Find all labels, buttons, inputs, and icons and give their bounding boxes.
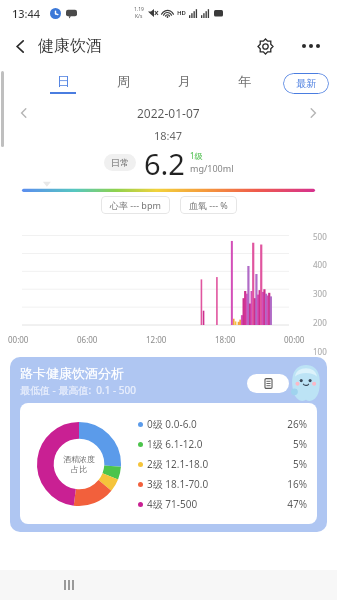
button[interactable]: Settings: [249, 30, 281, 62]
button[interactable]: 心率 --- bpm: [101, 196, 170, 214]
staticText: 5%: [292, 457, 307, 471]
staticText: 2级 12.1-18.0: [147, 457, 209, 471]
staticText: 26%: [287, 417, 307, 431]
button[interactable]: Back: [4, 30, 36, 62]
staticText: 1级 6.1-12.0: [147, 437, 203, 451]
staticText: 400: [313, 259, 327, 270]
staticText: 血氧 --- %: [189, 199, 228, 211]
staticText: 500: [313, 231, 327, 242]
staticText: 18:47: [154, 128, 183, 143]
staticText: 路卡健康饮酒分析: [20, 365, 124, 381]
staticText: HD: [177, 9, 186, 17]
staticText: 最低值 - 最高值: 0.1 - 500: [20, 383, 136, 397]
button[interactable]: 血氧 --- %: [180, 196, 237, 214]
staticText: 3级 18.1-70.0: [147, 477, 209, 491]
staticText: 日常: [111, 157, 129, 168]
button[interactable]: 最新: [283, 73, 329, 94]
staticText: 心率 --- bpm: [110, 199, 161, 211]
staticText: 00:00: [8, 334, 29, 345]
staticText: mg/100ml: [190, 162, 234, 174]
staticText: 年: [238, 73, 251, 89]
button[interactable]: 年: [221, 71, 267, 96]
staticText: 1级: [190, 150, 203, 161]
staticText: 5%: [292, 437, 307, 451]
staticText: 健康饮酒: [38, 36, 102, 56]
staticText: 100: [313, 346, 327, 357]
staticText: 13:44: [12, 6, 41, 21]
button[interactable]: 日: [40, 71, 86, 96]
button[interactable]: 周: [100, 71, 146, 96]
staticText: 2022-01-07: [137, 105, 200, 121]
button[interactable]: Next day: [301, 101, 325, 125]
staticText: 18:00: [215, 334, 236, 345]
staticText: 16%: [287, 477, 307, 491]
button[interactable]: Report: [247, 374, 289, 393]
button[interactable]: Previous day: [12, 101, 36, 125]
staticText: 06:00: [77, 334, 98, 345]
button[interactable]: More options: [295, 30, 327, 62]
button[interactable]: Recent apps: [51, 570, 87, 600]
staticText: 月: [178, 73, 191, 89]
staticText: 12:00: [146, 334, 167, 345]
staticText: 0级 0.0-6.0: [147, 417, 197, 431]
staticText: K/s: [135, 13, 143, 20]
button[interactable]: 月: [161, 71, 207, 96]
staticText: 1.19: [134, 6, 144, 13]
staticText: 00:00: [284, 334, 305, 345]
staticText: 酒精浓度: [63, 454, 95, 464]
staticText: 最新: [296, 77, 316, 90]
staticText: 4级 71-500: [147, 497, 198, 511]
staticText: 300: [313, 288, 327, 299]
staticText: 周: [117, 73, 130, 89]
staticText: 6.2: [144, 144, 185, 180]
staticText: 占比: [71, 464, 87, 474]
staticText: 47%: [287, 497, 307, 511]
staticText: 200: [313, 317, 327, 328]
staticText: 日: [57, 73, 70, 89]
